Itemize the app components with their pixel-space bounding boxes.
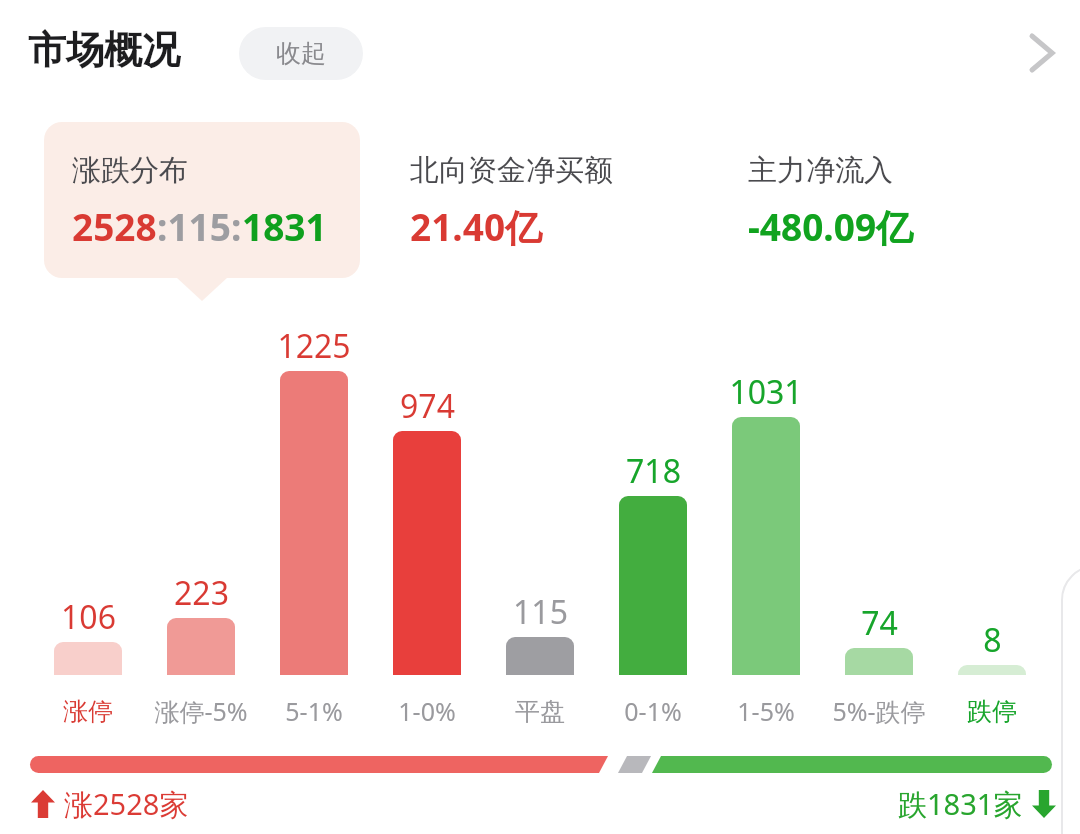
- staticText: 跌1831家: [898, 784, 1023, 824]
- staticText: 223: [174, 571, 229, 613]
- staticText: 1831: [242, 201, 327, 251]
- staticText: -480.09亿: [748, 201, 914, 252]
- button[interactable]: 收起: [239, 27, 363, 80]
- staticText: 1-5%: [737, 694, 795, 728]
- button[interactable]: 跌1831家: [898, 784, 1057, 824]
- button[interactable]: 涨2528家: [30, 784, 189, 824]
- staticText: 跌停: [967, 696, 1017, 727]
- staticText: 涨2528家: [64, 784, 189, 824]
- staticText: 1225: [277, 324, 351, 366]
- staticText: 北向资金净买额: [410, 152, 613, 189]
- button[interactable]: 主力净流入: [720, 122, 1036, 278]
- staticText: 974: [400, 384, 455, 426]
- staticText: 8: [983, 618, 1002, 660]
- staticText: 718: [626, 449, 681, 491]
- staticText: 1-0%: [398, 694, 456, 728]
- staticText: 涨跌分布: [72, 152, 188, 189]
- staticText: 平盘: [515, 696, 565, 727]
- staticText: 涨停: [63, 696, 113, 727]
- staticText: 5%-跌停: [832, 694, 926, 728]
- staticText: 21.40亿: [410, 201, 543, 252]
- staticText: 涨停-5%: [154, 694, 248, 728]
- button[interactable]: More: [1010, 22, 1072, 84]
- staticText: 1031: [729, 370, 803, 412]
- staticText: 106: [61, 595, 116, 637]
- staticText: 2528: [72, 201, 157, 251]
- staticText: :115:: [157, 201, 242, 251]
- button[interactable]: 市场概况: [28, 26, 180, 74]
- staticText: 115: [513, 590, 568, 632]
- staticText: 市场概况: [28, 26, 180, 74]
- staticText: 主力净流入: [748, 152, 893, 189]
- staticText: 5-1%: [285, 694, 343, 728]
- staticText: 74: [861, 601, 898, 643]
- staticText: 0-1%: [624, 694, 682, 728]
- staticText: 收起: [276, 38, 326, 69]
- button[interactable]: 北向资金净买额: [382, 122, 698, 278]
- button[interactable]: 涨跌分布: [44, 122, 360, 278]
